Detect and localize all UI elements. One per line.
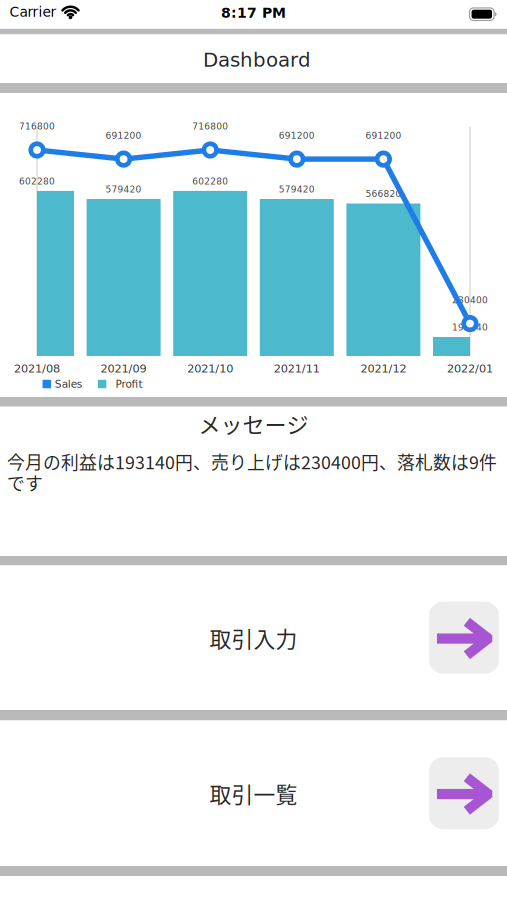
staticText: Carrier: [9, 4, 56, 20]
staticText: 193140: [452, 322, 488, 333]
staticText: 2021/12: [360, 362, 406, 375]
staticText: 2021/10: [187, 362, 233, 375]
staticText: 2021/09: [101, 362, 147, 375]
staticText: Dashboard: [203, 48, 311, 71]
staticText: 2021/11: [274, 362, 320, 375]
staticText: 716800: [19, 121, 55, 132]
staticText: 691200: [365, 130, 401, 141]
staticText: メッセージ: [198, 408, 308, 439]
staticText: 691200: [279, 130, 315, 141]
button[interactable]: 取引入力: [0, 565, 507, 710]
staticText: 取引一覧: [209, 777, 297, 809]
staticText: Sales: [55, 378, 82, 390]
staticText: 566820: [365, 189, 401, 199]
staticText: 716800: [192, 121, 228, 132]
staticText: 602280: [19, 176, 55, 187]
staticText: 取引入力: [209, 622, 297, 654]
staticText: 2022/01: [447, 362, 493, 375]
staticText: 579420: [106, 184, 142, 195]
staticText: 2021/08: [14, 362, 60, 375]
staticText: 602280: [192, 176, 228, 187]
button[interactable]: 取引一覧: [0, 720, 507, 866]
staticText: 691200: [106, 130, 142, 141]
staticText: 230400: [452, 295, 488, 305]
staticText: Profit: [115, 378, 142, 390]
staticText: 8:17 PM: [221, 5, 286, 21]
staticText: です: [7, 470, 43, 495]
staticText: 579420: [279, 184, 315, 195]
staticText: 今月の利益は193140円、売り上げは230400円、落札数は9件: [7, 449, 497, 474]
